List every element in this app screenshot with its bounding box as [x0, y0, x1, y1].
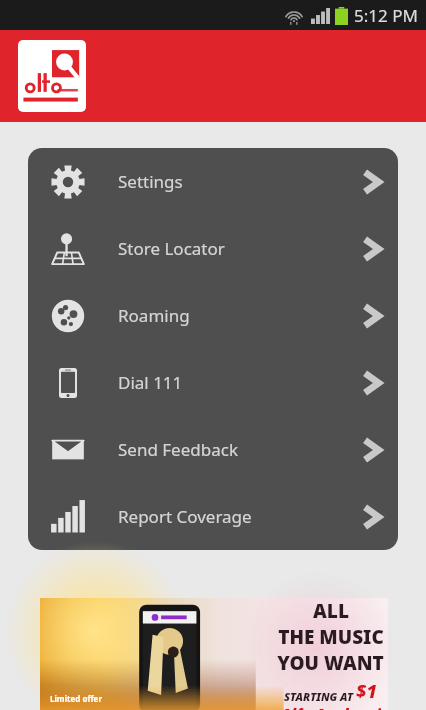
staticText: ALL	[313, 598, 349, 624]
staticText: Roaming	[118, 304, 190, 327]
staticText: Store Locator	[118, 237, 225, 260]
button[interactable]: Store Locator	[28, 215, 398, 282]
staticText: Dial 111	[118, 371, 183, 394]
button[interactable]: Report Coverage	[28, 483, 398, 550]
button[interactable]: Dial 111	[28, 349, 398, 416]
staticText: Report Coverage	[118, 505, 252, 528]
button[interactable]: Send Feedback	[28, 416, 398, 483]
button[interactable]: Roaming	[28, 282, 398, 349]
staticText: $1	[356, 679, 377, 704]
staticText: STARTING AT	[284, 689, 356, 704]
staticText: Alfa Anghami	[281, 704, 381, 710]
staticText: YOU WANT	[277, 650, 384, 676]
staticText: Settings	[118, 170, 183, 193]
staticText: THE MUSIC	[278, 624, 384, 650]
staticText: 5:12 PM	[354, 4, 418, 27]
button[interactable]: Alfa logo	[18, 40, 86, 112]
staticText: Send Feedback	[118, 438, 238, 461]
button[interactable]: Settings	[28, 148, 398, 215]
button[interactable]: Alfa Anghami advertisement	[40, 598, 388, 710]
staticText: Limited offer	[50, 693, 102, 704]
